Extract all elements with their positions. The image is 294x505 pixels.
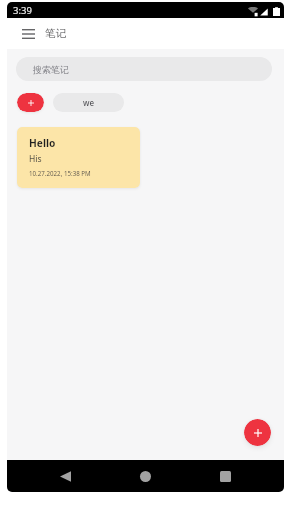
button[interactable]: Add tag	[17, 93, 44, 112]
staticText: 10.27.2022, 15:38 PM	[29, 169, 91, 177]
staticText: 3:39	[13, 4, 32, 17]
staticText: 笔记	[45, 27, 66, 40]
button[interactable]: Back	[52, 460, 79, 492]
button[interactable]: 搜索笔记	[16, 57, 272, 81]
button[interactable]: Hello	[17, 127, 140, 188]
button[interactable]: Home	[132, 460, 159, 492]
staticText: 搜索笔记	[33, 64, 69, 75]
button[interactable]: we	[53, 93, 124, 112]
button[interactable]: Menu	[19, 24, 38, 43]
staticText: His	[29, 153, 42, 165]
button[interactable]: Recents	[212, 460, 239, 492]
button[interactable]: Add note	[244, 419, 271, 446]
staticText: Hello	[29, 136, 56, 150]
staticText: we	[83, 97, 95, 108]
